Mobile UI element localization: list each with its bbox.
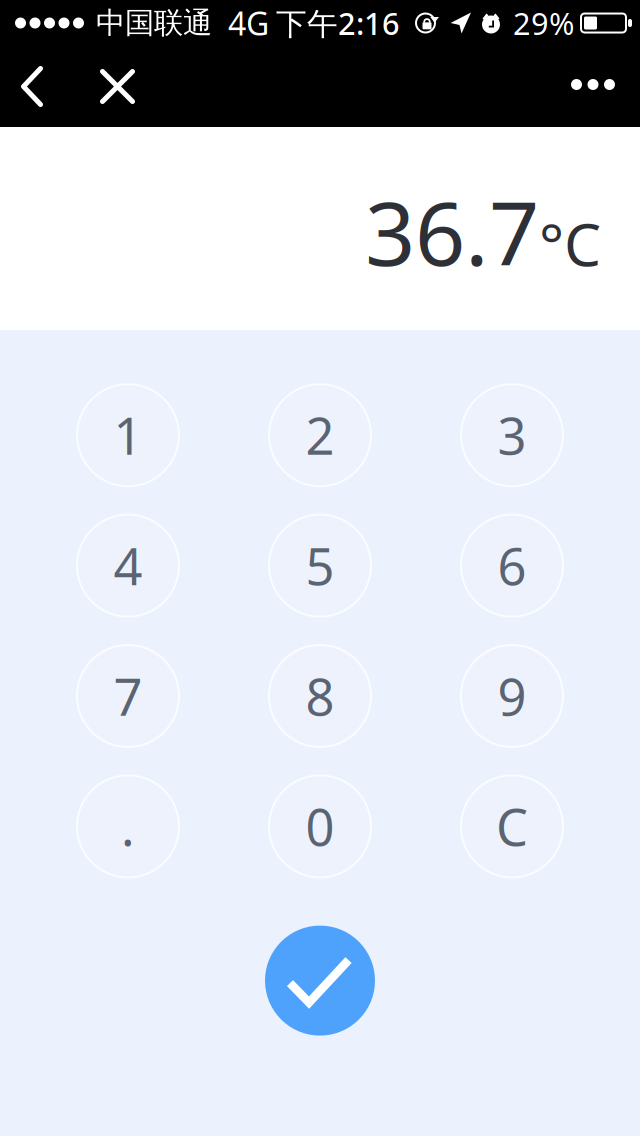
staticText: °C xyxy=(539,204,601,282)
staticText: 4G xyxy=(228,2,269,44)
button[interactable]: 4 xyxy=(63,501,193,631)
button[interactable]: 0 xyxy=(255,761,385,891)
staticText: C xyxy=(496,793,528,860)
staticText: 8 xyxy=(305,662,334,730)
staticText: 36.7 xyxy=(365,173,539,290)
staticText: 4 xyxy=(113,532,142,599)
staticText: 下午2:16 xyxy=(276,3,400,43)
button[interactable]: 8 xyxy=(255,631,385,761)
button[interactable]: C xyxy=(447,761,577,891)
staticText: . xyxy=(121,793,135,860)
button[interactable]: 5 xyxy=(255,501,385,631)
button[interactable]: 7 xyxy=(63,631,193,761)
button[interactable]: 2 xyxy=(255,370,385,500)
button[interactable]: 1 xyxy=(63,370,193,500)
staticText: 0 xyxy=(305,793,334,860)
staticText: 7 xyxy=(113,662,142,730)
staticText: 5 xyxy=(305,532,334,599)
staticText: 6 xyxy=(497,532,526,599)
staticText: 3 xyxy=(497,402,526,469)
button[interactable]: Confirm xyxy=(255,916,385,1046)
staticText: 29% xyxy=(513,3,574,43)
button[interactable]: 6 xyxy=(447,501,577,631)
button[interactable]: Back xyxy=(0,46,64,127)
staticText: 2 xyxy=(305,402,334,469)
staticText: 中国联通 xyxy=(96,5,212,41)
button[interactable]: More xyxy=(546,46,640,127)
button[interactable]: 9 xyxy=(447,631,577,761)
button[interactable]: Close xyxy=(64,46,171,127)
staticText: 1 xyxy=(113,402,142,469)
button[interactable]: . xyxy=(63,761,193,891)
button[interactable]: 3 xyxy=(447,370,577,500)
staticText: 9 xyxy=(497,662,526,730)
